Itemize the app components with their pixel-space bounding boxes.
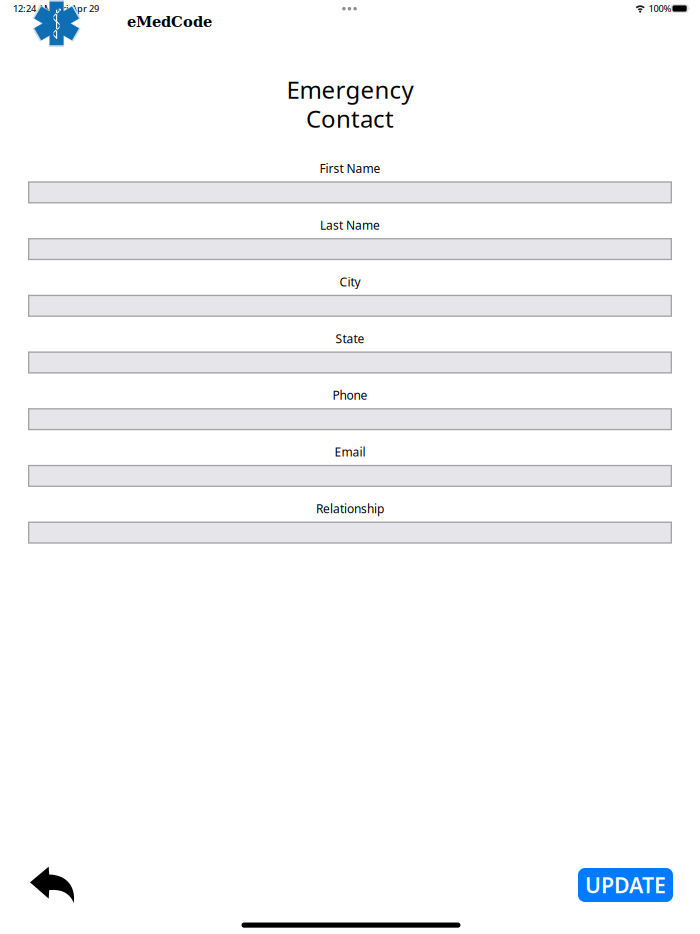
staticText: First Name — [319, 160, 380, 176]
staticText: 100% — [648, 2, 671, 15]
staticText: State — [335, 330, 364, 346]
staticText: Last Name — [320, 217, 380, 233]
staticText: UPDATE — [585, 871, 666, 899]
button[interactable]: State — [28, 351, 672, 373]
button[interactable]: UPDATE — [578, 868, 673, 902]
button[interactable]: City — [28, 295, 672, 317]
staticText: Phone — [332, 387, 367, 403]
button[interactable]: Email — [28, 465, 672, 487]
staticText: City — [339, 274, 360, 290]
button[interactable]: Relationship — [28, 522, 672, 544]
staticText: Relationship — [316, 501, 384, 516]
staticText: eMedCode — [127, 13, 212, 30]
staticText: Contact — [306, 103, 394, 134]
button[interactable]: Phone — [28, 408, 672, 430]
button[interactable]: First Name — [28, 181, 672, 203]
button[interactable]: Last Name — [28, 238, 672, 260]
button[interactable]: Back — [22, 859, 82, 911]
staticText: 12:24 AM Fri Apr 29 — [13, 2, 99, 15]
staticText: Emergency — [286, 74, 413, 105]
staticText: Email — [334, 444, 365, 460]
